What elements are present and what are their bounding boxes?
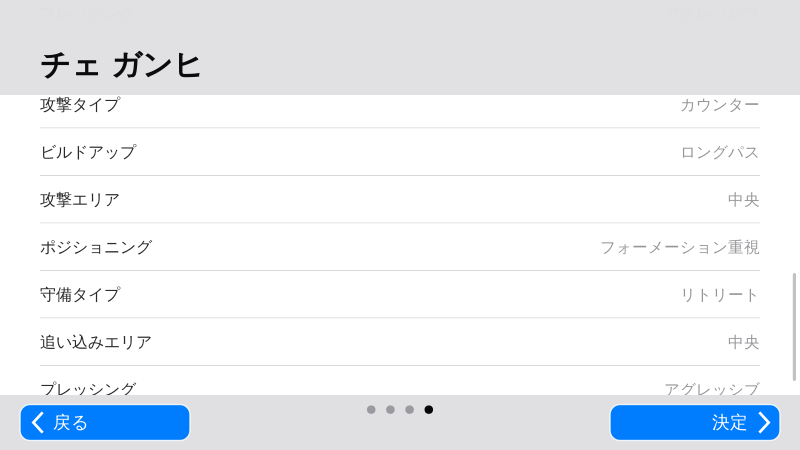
staticText: 追い込みエリア [40, 332, 152, 352]
staticText: リトリート [680, 285, 760, 305]
staticText: アグレッシブ [664, 380, 760, 400]
button[interactable]: 攻撃タイプ [0, 81, 800, 128]
button[interactable]: プレッシング [0, 366, 800, 413]
staticText: 守備タイプ [40, 285, 120, 305]
staticText: 攻撃エリア [40, 190, 120, 210]
staticText: 中央 [728, 332, 760, 352]
staticText: カウンター [680, 95, 760, 115]
staticText: 中央 [728, 190, 760, 210]
staticText: 決定 [712, 411, 748, 434]
button[interactable]: 攻撃エリア [0, 176, 800, 223]
staticText: ロングパス [680, 142, 760, 162]
button[interactable]: 決定 [610, 404, 780, 440]
button[interactable]: 追い込みエリア [0, 318, 800, 366]
button[interactable]: 戻る [20, 404, 190, 440]
staticText: プレッシング [40, 380, 136, 400]
staticText: 攻撃タイプ [40, 95, 120, 115]
staticText: ポジショニング [40, 237, 152, 257]
staticText: チェ ガンヒ [40, 46, 204, 84]
staticText: ビルドアップ [40, 142, 136, 162]
staticText: 戻る [53, 411, 89, 434]
button[interactable]: ポジショニング [0, 223, 800, 271]
button[interactable]: 守備タイプ [0, 271, 800, 318]
staticText: フォーメーション重視 [600, 237, 760, 257]
button[interactable]: ビルドアップ [0, 128, 800, 176]
